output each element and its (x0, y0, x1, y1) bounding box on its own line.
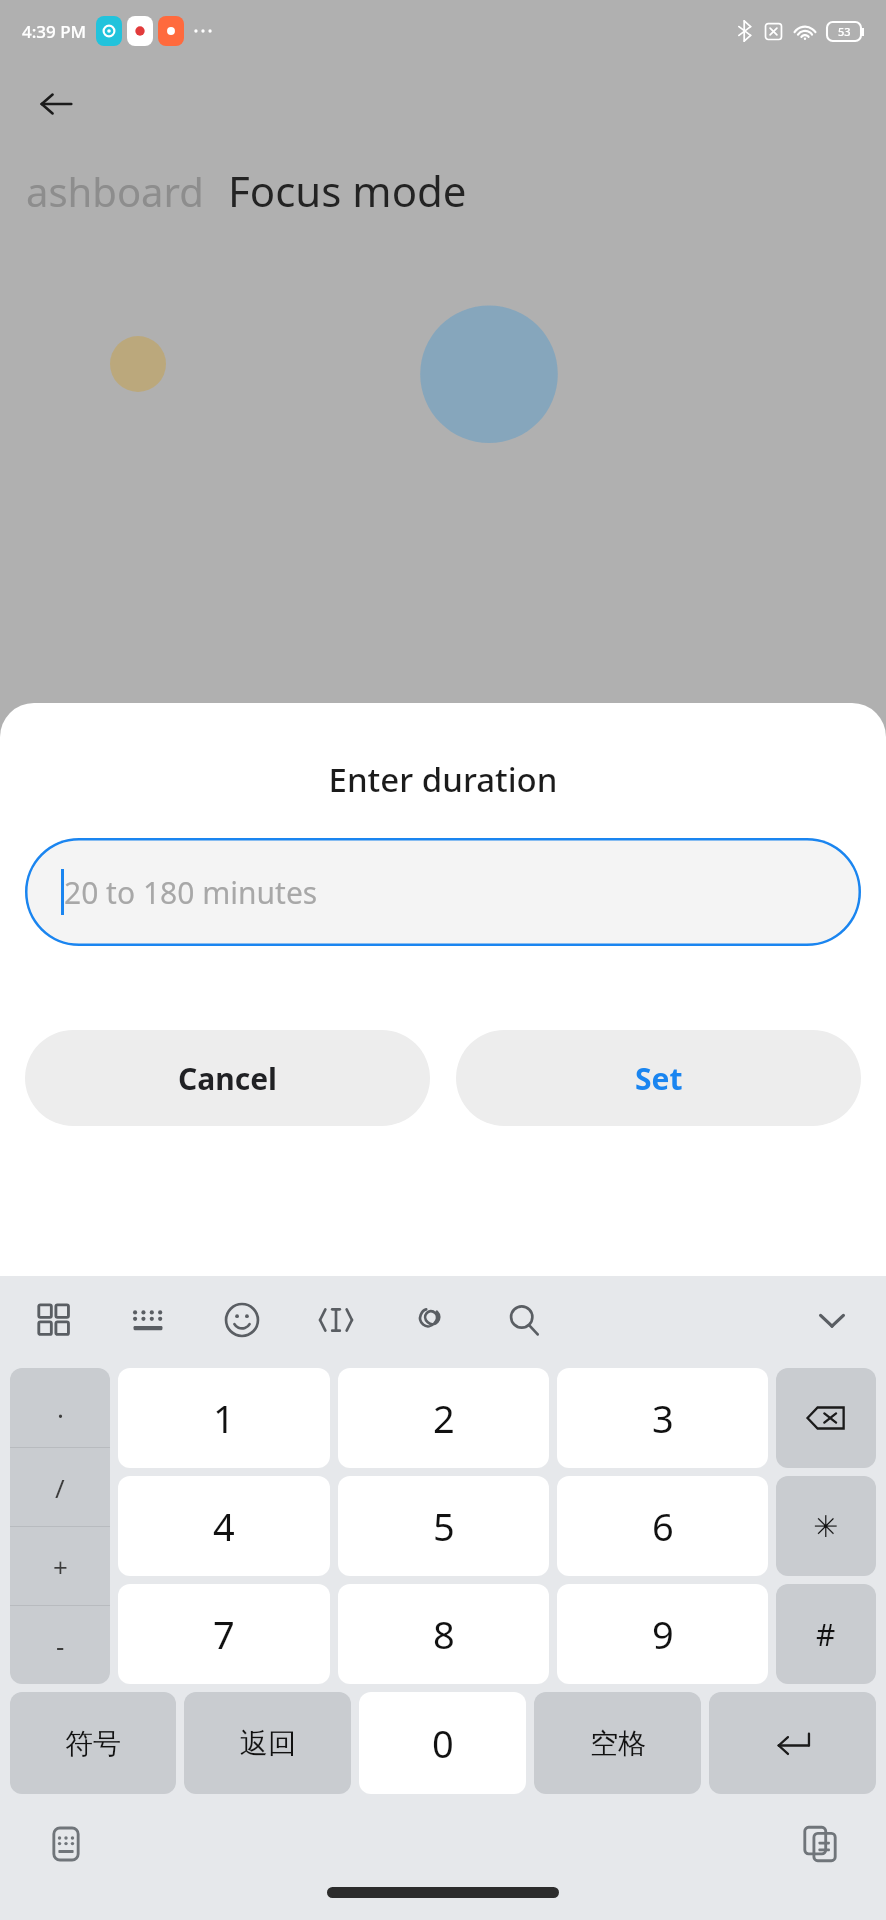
button[interactable]: / (10, 1448, 110, 1526)
button[interactable]: 4 (118, 1476, 330, 1576)
button[interactable]: Set (456, 1030, 861, 1126)
staticText: ashboard (26, 164, 204, 218)
staticText: # (816, 1614, 836, 1655)
staticText: - (56, 1628, 65, 1663)
button[interactable]: 5 (338, 1476, 549, 1576)
button[interactable]: Apps (28, 1294, 80, 1346)
staticText: 4 (213, 1500, 235, 1552)
staticText: 返回 (240, 1726, 296, 1761)
staticText: Set (635, 1058, 683, 1099)
staticText: 0 (432, 1717, 454, 1769)
button[interactable]: Search (498, 1294, 550, 1346)
button[interactable]: Emoji (216, 1294, 268, 1346)
button[interactable]: 3 (557, 1368, 768, 1468)
button[interactable]: + (10, 1527, 110, 1605)
staticText: Enter duration (0, 757, 886, 802)
staticText: 7 (213, 1608, 235, 1660)
staticText: 1 (213, 1392, 235, 1444)
staticText: 3 (652, 1392, 674, 1444)
staticText: 空格 (590, 1726, 646, 1761)
button[interactable]: 0 (359, 1692, 526, 1794)
button[interactable]: 1 (118, 1368, 330, 1468)
staticText: 9 (652, 1608, 674, 1660)
button[interactable]: 9 (557, 1584, 768, 1684)
button[interactable]: Back (28, 76, 84, 132)
button[interactable]: Keyboard layout (122, 1294, 174, 1346)
staticText: 5 (433, 1500, 455, 1552)
button[interactable]: - (10, 1606, 110, 1684)
button[interactable]: # (776, 1584, 876, 1684)
button[interactable]: . (10, 1368, 110, 1447)
button[interactable]: 返回 (184, 1692, 351, 1794)
staticText: 20 to 180 minutes (64, 872, 318, 913)
button[interactable]: 6 (557, 1476, 768, 1576)
button[interactable]: 20 to 180 minutes (25, 838, 861, 946)
staticText: 6 (652, 1500, 674, 1552)
staticText: . (57, 1390, 64, 1425)
button[interactable]: 2 (338, 1368, 549, 1468)
button[interactable]: Backspace (776, 1368, 876, 1468)
staticText: 符号 (65, 1726, 121, 1761)
button[interactable]: Hide keyboard (806, 1294, 858, 1346)
button[interactable]: Cancel (25, 1030, 430, 1126)
staticText: 4:39 PM (22, 20, 87, 43)
staticText: Focus mode (228, 162, 467, 219)
button[interactable]: Enter (709, 1692, 876, 1794)
button[interactable]: 空格 (534, 1692, 701, 1794)
button[interactable]: Switch keyboard (36, 1814, 96, 1874)
staticText: 53 (838, 24, 851, 39)
button[interactable]: Attach (404, 1294, 456, 1346)
button[interactable]: Clipboard (790, 1814, 850, 1874)
button[interactable]: ✳ (776, 1476, 876, 1576)
staticText: / (55, 1470, 65, 1505)
button[interactable]: 符号 (10, 1692, 176, 1794)
button[interactable]: 8 (338, 1584, 549, 1684)
button[interactable]: 7 (118, 1584, 330, 1684)
staticText: ✳ (813, 1509, 839, 1544)
button[interactable]: Text editing (310, 1294, 362, 1346)
staticText: Cancel (178, 1058, 278, 1099)
staticText: 2 (433, 1392, 455, 1444)
staticText: 8 (433, 1608, 455, 1660)
staticText: + (53, 1549, 68, 1584)
